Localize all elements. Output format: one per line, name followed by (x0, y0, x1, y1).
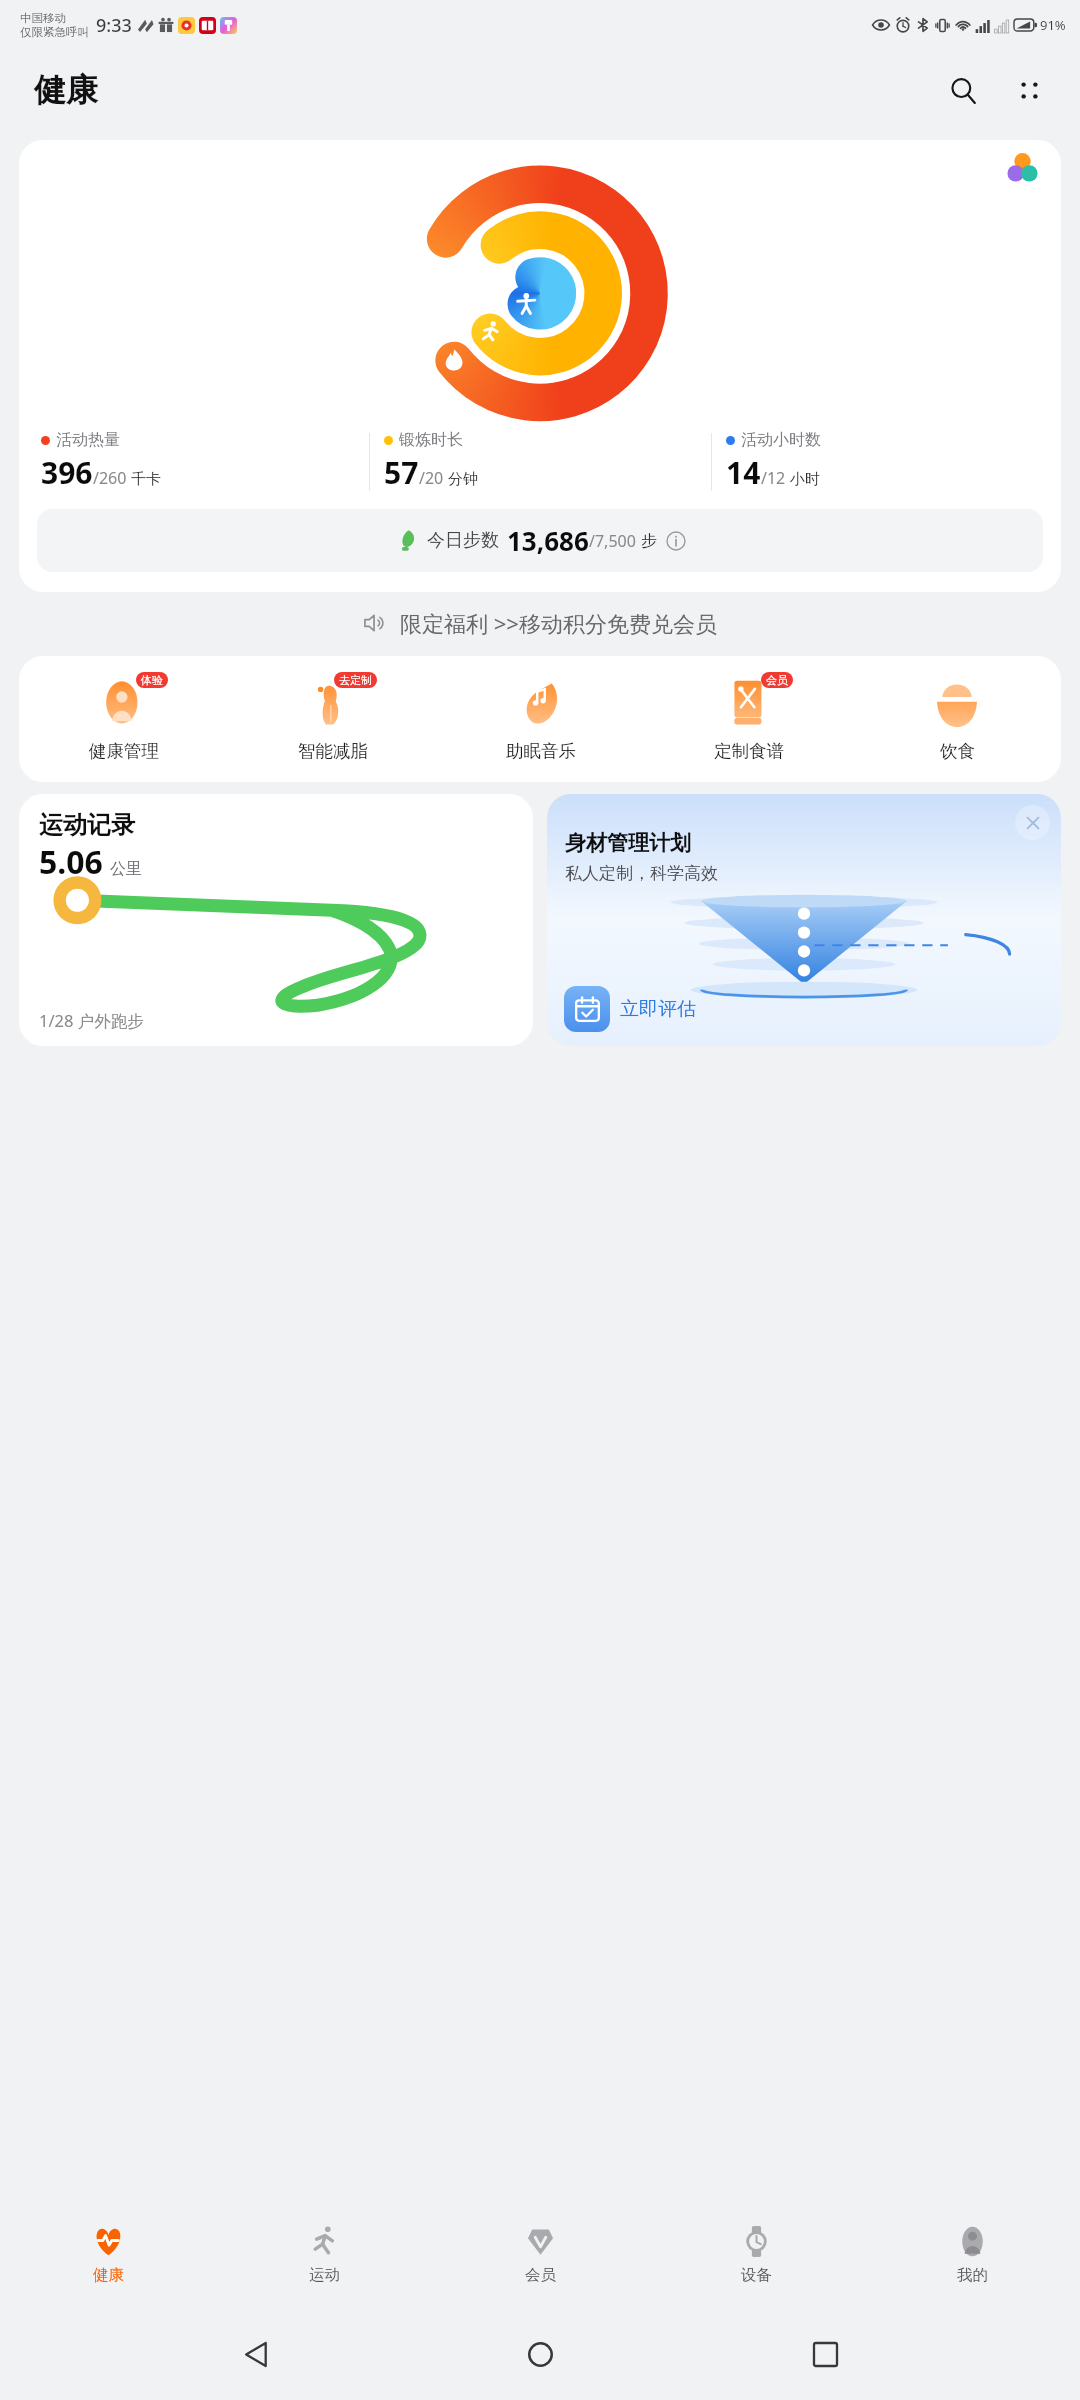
staticText: 会员 (766, 673, 788, 687)
button[interactable]: 设备 (648, 2202, 864, 2308)
staticText: 今日步数 (427, 529, 499, 552)
staticText: 1/28 户外跑步 (39, 1009, 144, 1032)
staticText: 助眠音乐 (506, 740, 576, 762)
staticText: 身材管理计划 (565, 830, 691, 856)
button[interactable]: 健康 (0, 2202, 216, 2308)
button[interactable]: 去定制 (228, 674, 437, 762)
staticText: 千卡 (131, 470, 161, 489)
staticText: 运动记录 (39, 810, 135, 840)
staticText: /7,500 (589, 530, 636, 552)
button[interactable]: 运动健康 (983, 140, 1061, 194)
staticText: 57 (384, 452, 419, 493)
staticText: 13,686 (507, 523, 589, 558)
staticText: 智能减脂 (298, 740, 368, 762)
staticText: 锻炼时长 (399, 430, 463, 450)
staticText: 运动 (309, 2265, 340, 2285)
button[interactable]: 活动热量 (19, 140, 1061, 592)
button[interactable]: 我的 (864, 2202, 1080, 2308)
staticText: 活动小时数 (741, 430, 821, 450)
button[interactable]: 今日步数 (37, 509, 1043, 572)
staticText: 去定制 (339, 673, 372, 687)
staticText: 我的 (957, 2265, 988, 2285)
staticText: 定制食谱 (714, 740, 784, 762)
staticText: 小时 (790, 470, 820, 489)
button[interactable]: 会员 (432, 2202, 648, 2308)
button[interactable]: 助眠音乐 (437, 674, 645, 762)
staticText: 饮食 (940, 740, 975, 762)
staticText: 仅限紧急呼叫 (20, 25, 89, 39)
button[interactable]: 运动 (216, 2202, 432, 2308)
staticText: /12 (761, 467, 786, 489)
button[interactable]: 体验 (19, 674, 228, 762)
button[interactable]: 运动记录 (19, 794, 533, 1046)
staticText: 396 (41, 452, 93, 493)
button[interactable]: 搜索 (938, 65, 988, 115)
button[interactable]: 身材管理计划 (547, 794, 1061, 1046)
staticText: 私人定制，科学高效 (565, 863, 718, 884)
button[interactable]: 饮食 (853, 674, 1061, 762)
button[interactable]: 会员 (645, 674, 853, 762)
button[interactable]: 关闭 (1015, 805, 1050, 840)
staticText: 健康 (93, 2265, 124, 2285)
staticText: 设备 (741, 2265, 772, 2285)
staticText: /20 (419, 467, 444, 489)
button[interactable]: 更多 (1004, 65, 1054, 115)
staticText: 中国移动 (20, 11, 66, 25)
button[interactable]: 最近任务 (796, 2325, 854, 2383)
staticText: 健康管理 (89, 740, 159, 762)
staticText: 9:33 (96, 13, 132, 38)
staticText: 91% (1040, 16, 1066, 34)
staticText: 5.06 (39, 840, 103, 884)
staticText: 活动热量 (56, 430, 120, 450)
staticText: /260 (93, 467, 127, 489)
staticText: 会员 (525, 2265, 556, 2285)
staticText: 14 (726, 452, 761, 493)
staticText: 公里 (110, 859, 142, 879)
button[interactable]: 限定福利 >>移动积分免费兑会员 (0, 600, 1080, 646)
button[interactable]: 返回 (227, 2325, 285, 2383)
staticText: 体验 (141, 673, 163, 687)
button[interactable]: 主页 (511, 2325, 569, 2383)
staticText: 健康 (34, 70, 98, 110)
staticText: 步 (641, 531, 657, 551)
staticText: 限定福利 >>移动积分免费兑会员 (400, 608, 717, 638)
staticText: 分钟 (448, 470, 478, 489)
staticText: 立即评估 (620, 997, 696, 1021)
